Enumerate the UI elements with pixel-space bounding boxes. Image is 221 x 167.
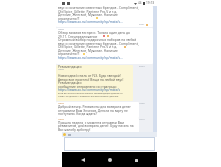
staticText: Нюта (58, 102, 64, 105)
staticText: Рекомендации (58, 65, 82, 69)
button[interactable] (56, 102, 139, 118)
staticText: Нюта (58, 28, 64, 31)
staticText: ограничено!!! (58, 17, 80, 21)
staticText: Новогодний стиль от FLS. Будь звездой! (58, 74, 121, 78)
button[interactable]: Back (78, 155, 88, 165)
staticText: Авторские проекты! Вещи на любой вкус! (58, 78, 124, 82)
staticText: слово 'Ты друзей у' нажмите 'распростран… (58, 95, 119, 98)
staticText: поступили. Когда ждать? (58, 112, 98, 116)
button[interactable] (56, 6, 153, 27)
staticText: Вас жалобу арбитру! (58, 128, 91, 132)
staticText: реквизитов, для возврата денег. Буду пис… (58, 124, 134, 128)
button[interactable] (56, 28, 153, 64)
staticText: сообщение отправлено со страницы: (58, 85, 117, 89)
staticText: Нюта (58, 118, 64, 121)
button[interactable]: Emoji (63, 133, 66, 136)
staticText: ограничено!!! (58, 52, 80, 56)
staticText: 19:13 (139, 118, 145, 121)
staticText: Огромный выбор подарочных наборов на люб… (58, 38, 137, 42)
staticText: Нюта (58, 68, 64, 71)
staticText: Детские, Женские, Мужские. Наличие (58, 13, 118, 17)
staticText: отправили Вам Элчесов. Деньги на карту н… (58, 109, 128, 113)
staticText: https://www.xx.ru/community/sp/mats/s... (58, 56, 123, 60)
button[interactable] (56, 65, 133, 101)
staticText: Добрый вечер. Реквизиты для возврата ден… (58, 105, 132, 109)
staticText: Рекомендации (58, 81, 82, 85)
staticText: 19:03 (139, 102, 145, 105)
staticText: Обзор заказов экспресс. Только один день… (58, 31, 131, 35)
staticText: Прошла неделя, с момента отправки Вам (58, 121, 125, 125)
button[interactable]: Message (64, 137, 155, 151)
staticText: https://www.xx.ru/community/sp/mats/s (58, 88, 121, 92)
button[interactable] (56, 118, 139, 134)
staticText: Old Spice, Gillette, Pantene Pro-V и т.д… (58, 10, 118, 14)
staticText: Если вы хотите распространить рекомендац… (58, 92, 123, 95)
staticText: вкус и сочетание известных брендов - Com… (58, 6, 139, 10)
staticText: Детские, Женские, Мужские. Наличие (58, 49, 118, 53)
staticText: 23:44 (139, 65, 145, 68)
staticText: 29.11. Спецпредложение (58, 35, 98, 39)
button[interactable]: Home (105, 155, 115, 165)
staticText: 23:41 (139, 23, 145, 26)
button[interactable]: Recent apps (131, 155, 141, 165)
staticText: 19:13 (146, 1, 155, 5)
staticText: Old Spice, Gillette, Pantene Pro-V и т.д… (58, 45, 118, 49)
staticText: 44 (138, 1, 142, 5)
staticText: вкус и сочетание известных брендов - Com… (58, 42, 139, 46)
staticText: https://www.xx.ru/community/sp/mats/s... (58, 20, 123, 24)
